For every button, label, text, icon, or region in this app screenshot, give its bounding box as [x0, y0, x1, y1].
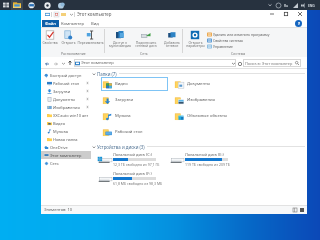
staticText: Свойства — [42, 40, 58, 45]
button[interactable]: Музыка — [41, 127, 91, 135]
staticText: Управление — [213, 44, 233, 49]
button[interactable]: Удалить или изменить программу — [207, 31, 270, 37]
staticText: Этот компьютер — [50, 153, 91, 158]
button[interactable]: Network — [291, 1, 299, 9]
button[interactable]: Поиск в: Этот компьютер — [243, 59, 301, 67]
button[interactable]: OneDrive — [41, 143, 91, 151]
button[interactable]: Документы — [173, 77, 240, 91]
button[interactable]: Вид — [87, 20, 103, 28]
button[interactable]: Settings — [43, 0, 52, 10]
button[interactable]: Refresh — [236, 60, 243, 67]
button[interactable]: Компьютер — [59, 20, 87, 28]
staticText: Папки (7) — [97, 71, 117, 77]
staticText: Локальный диск (C:) — [113, 152, 153, 157]
button[interactable]: Up one level — [66, 59, 74, 67]
button[interactable]: ENG — [307, 1, 316, 9]
button[interactable]: Объемные объекты — [173, 109, 240, 123]
button[interactable]: Быстрый доступ — [41, 71, 91, 79]
button[interactable]: Изображения — [173, 93, 240, 107]
staticText: Устройства и диски (3) — [97, 144, 145, 150]
staticText: Видео — [53, 121, 91, 126]
staticText: Локальный диск (F:) — [113, 171, 152, 176]
button[interactable]: Локальный диск (E:) — [168, 150, 240, 169]
button[interactable]: Свойства — [41, 30, 59, 45]
staticText: Доступ к мультимедиа — [109, 40, 131, 48]
button[interactable]: Локальный диск (F:) — [96, 169, 168, 188]
button[interactable]: Back — [42, 59, 51, 68]
button[interactable]: Новая папка — [41, 135, 91, 143]
staticText: Документы — [53, 97, 86, 102]
button[interactable]: Открыть — [59, 30, 77, 45]
button[interactable]: Этот компьютер — [74, 59, 236, 67]
button[interactable]: Этот компьютер — [41, 151, 91, 159]
staticText: Быстрый доступ — [50, 73, 91, 78]
button[interactable]: Paint — [57, 0, 66, 10]
button[interactable]: Internet Explorer — [27, 0, 36, 10]
button[interactable]: Volume — [299, 1, 307, 9]
button[interactable]: Локальный диск (C:) — [96, 150, 168, 169]
staticText: Изображения — [53, 105, 86, 110]
button[interactable]: Ru — [282, 1, 291, 9]
staticText: Подключить сетевой диск — [135, 40, 157, 48]
staticText: Компьютер — [61, 21, 85, 27]
staticText: Локальный диск (E:) — [185, 152, 224, 157]
button[interactable]: Large icons view — [298, 206, 305, 213]
button[interactable]: Customize toolbar — [68, 11, 74, 17]
button[interactable]: File Explorer — [11, 0, 23, 10]
staticText: Открыть — [61, 40, 76, 45]
staticText: XXCauto win10 акт — [53, 113, 91, 118]
button[interactable]: Close — [293, 9, 307, 19]
staticText: Загрузки — [115, 97, 133, 103]
button[interactable]: Свойства системы — [207, 37, 244, 43]
staticText: OneDrive — [50, 145, 91, 150]
button[interactable]: Сеть — [41, 159, 91, 167]
button[interactable]: Properties — [53, 11, 60, 18]
button[interactable]: Загрузки — [41, 87, 91, 95]
staticText: Объемные объекты — [187, 113, 228, 119]
staticText: Добавить сетевое расположение — [159, 40, 185, 48]
button[interactable]: Forward — [51, 59, 60, 68]
staticText: Загрузки — [53, 89, 86, 94]
button[interactable]: XXCauto win10 акт — [41, 111, 91, 119]
button[interactable]: Рабочий стол — [101, 125, 168, 139]
button[interactable]: Добавить сетевое расположение — [159, 30, 185, 48]
button[interactable]: Документы — [41, 95, 91, 103]
button[interactable]: Рабочий стол — [41, 79, 91, 87]
button[interactable]: Изображения — [41, 103, 91, 111]
button[interactable]: Видео — [101, 77, 168, 91]
button[interactable]: Show hidden icons — [266, 1, 274, 9]
button[interactable]: Minimize — [265, 9, 279, 19]
button[interactable]: Recent locations — [60, 60, 66, 66]
button[interactable]: Доступ к мультимедиа — [107, 30, 133, 48]
button[interactable]: Help — [295, 20, 302, 27]
staticText: Рабочий стол — [115, 129, 143, 135]
staticText: Сеть — [140, 51, 148, 56]
button[interactable]: New folder — [60, 11, 67, 18]
button[interactable]: Details view — [291, 206, 298, 213]
staticText: Изображения — [187, 97, 215, 103]
button[interactable]: Подключить сетевой диск — [133, 30, 159, 48]
staticText: Переименовать — [77, 40, 104, 45]
button[interactable]: Управление — [207, 43, 233, 49]
button[interactable]: Загрузки — [101, 93, 168, 107]
staticText: Новая папка — [53, 137, 91, 142]
staticText: Этот компьютер — [81, 60, 114, 66]
staticText: 61,8 МБ свободно из 98,3 МБ — [113, 181, 163, 186]
button[interactable]: Открыть параметры — [183, 30, 207, 48]
staticText: 119 ТБ свободно из 209 ТБ — [185, 162, 230, 167]
staticText: Рабочий стол — [53, 81, 86, 86]
button[interactable]: Start — [2, 0, 10, 10]
button[interactable]: Maximize — [279, 9, 293, 19]
staticText: 12,3 ГБ свободно из 97,1 ГБ — [113, 162, 160, 167]
button[interactable]: Видео — [41, 119, 91, 127]
button[interactable]: Explorer menu — [43, 10, 51, 18]
staticText: Музыка — [115, 113, 131, 119]
button[interactable]: Переименовать — [77, 30, 104, 45]
button[interactable]: Tray item — [274, 1, 282, 9]
staticText: Открыть параметры — [186, 40, 205, 48]
staticText: Документы — [187, 81, 211, 87]
button[interactable]: Файл — [42, 20, 59, 28]
staticText: ? — [298, 21, 300, 27]
staticText: Этот компьютер — [77, 11, 112, 17]
button[interactable]: Музыка — [101, 109, 168, 123]
